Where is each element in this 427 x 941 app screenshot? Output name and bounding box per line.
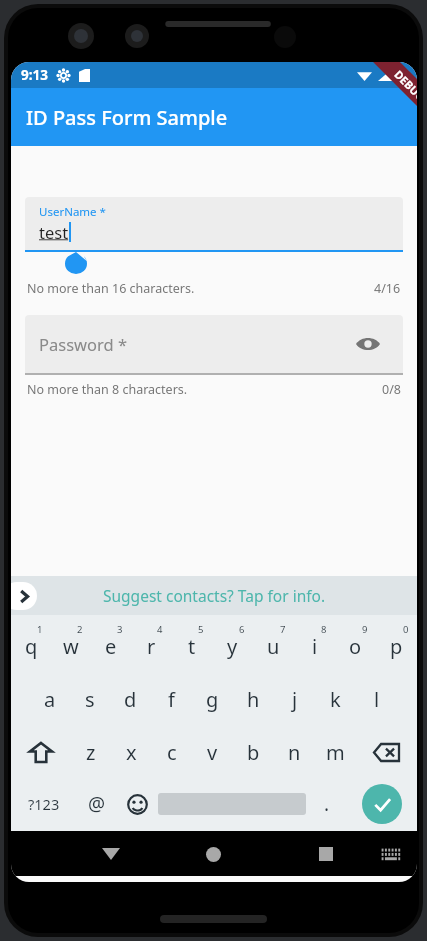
staticText: b [247,739,260,766]
button[interactable]: v [192,727,233,777]
staticText: m [326,739,345,766]
staticText: 3 [117,623,123,636]
staticText: 7 [280,623,286,636]
staticText: f [168,686,175,713]
staticText: w [63,633,79,660]
button[interactable]: x [111,727,151,777]
button[interactable]: Suggest contacts? Tap for info. [103,585,326,606]
staticText: z [86,739,96,766]
button[interactable]: d [110,674,151,724]
staticText: g [206,686,219,713]
staticText: 8 [321,623,327,636]
button[interactable]: y [212,621,253,671]
button[interactable]: u [253,621,294,671]
button[interactable]: o [335,621,376,671]
staticText: DEBUG [391,67,417,104]
button[interactable]: Back [89,832,133,876]
staticText: 6 [239,623,245,636]
button[interactable]: z [71,727,111,777]
button[interactable]: l [356,674,397,724]
staticText: d [124,686,137,713]
staticText: UserName * [39,204,106,220]
button[interactable]: Shift [11,727,71,777]
staticText: 9:13 [21,66,48,84]
button[interactable]: Space [158,780,306,828]
button[interactable]: j [274,674,315,724]
staticText: 1 [37,623,43,636]
button[interactable]: i [294,621,335,671]
button[interactable]: Home [191,832,235,876]
staticText: c [167,739,177,766]
button[interactable]: m [315,727,356,777]
button[interactable]: ?123 [11,780,76,828]
button[interactable]: Emoji [117,780,158,828]
staticText: k [330,686,341,713]
button[interactable]: Password * [25,315,403,373]
button[interactable]: a [30,674,70,724]
staticText: y [227,633,238,660]
staticText: No more than 16 characters. [27,280,374,297]
staticText: 5 [198,623,204,636]
staticText: q [25,633,38,660]
staticText: p [390,633,403,660]
button[interactable]: s [70,674,110,724]
staticText: ?123 [28,794,60,814]
staticText: t [188,633,196,660]
staticText: j [292,686,298,713]
staticText: 9 [362,623,368,636]
button[interactable]: @ [76,780,117,828]
staticText: l [374,686,380,713]
button[interactable]: f [151,674,192,724]
staticText: h [247,686,260,713]
button[interactable]: c [151,727,192,777]
staticText: Suggest contacts? Tap for info. [103,585,326,606]
button[interactable]: w [51,621,91,671]
button[interactable]: . [306,780,347,828]
button[interactable]: q [11,621,51,671]
staticText: 0/8 [382,381,401,398]
button[interactable]: Show password [351,327,385,361]
button[interactable]: t [171,621,212,671]
staticText: n [288,739,301,766]
button[interactable]: b [233,727,274,777]
button[interactable]: Backspace [356,727,417,777]
button[interactable]: Expand suggestions [11,582,37,610]
button[interactable]: n [274,727,315,777]
staticText: r [147,633,156,660]
staticText: . [324,791,330,817]
staticText: x [126,739,137,766]
button[interactable]: Recents [304,832,348,876]
staticText: No more than 8 characters. [27,381,382,398]
staticText: @ [88,791,106,817]
button[interactable]: p [376,621,417,671]
staticText: v [207,739,218,766]
staticText: i [312,633,318,660]
button[interactable]: Switch keyboard [371,834,411,874]
staticText: test [39,221,69,243]
button[interactable]: r [131,621,171,671]
button[interactable]: e [91,621,131,671]
staticText: o [349,633,362,660]
staticText: Password * [39,333,128,355]
staticText: ID Pass Form Sample [26,104,228,131]
staticText: 4/16 [374,280,401,297]
button[interactable]: g [192,674,233,724]
staticText: s [85,686,95,713]
staticText: 2 [77,623,83,636]
button[interactable]: h [233,674,274,724]
staticText: a [44,686,56,713]
button[interactable]: Enter [347,780,417,828]
staticText: u [267,633,280,660]
button[interactable]: ID Pass Form Sample [11,88,417,146]
staticText: 4 [157,623,163,636]
staticText: 0 [403,623,409,636]
button[interactable]: k [315,674,356,724]
button[interactable]: UserName * [25,197,403,250]
staticText: e [105,633,117,660]
